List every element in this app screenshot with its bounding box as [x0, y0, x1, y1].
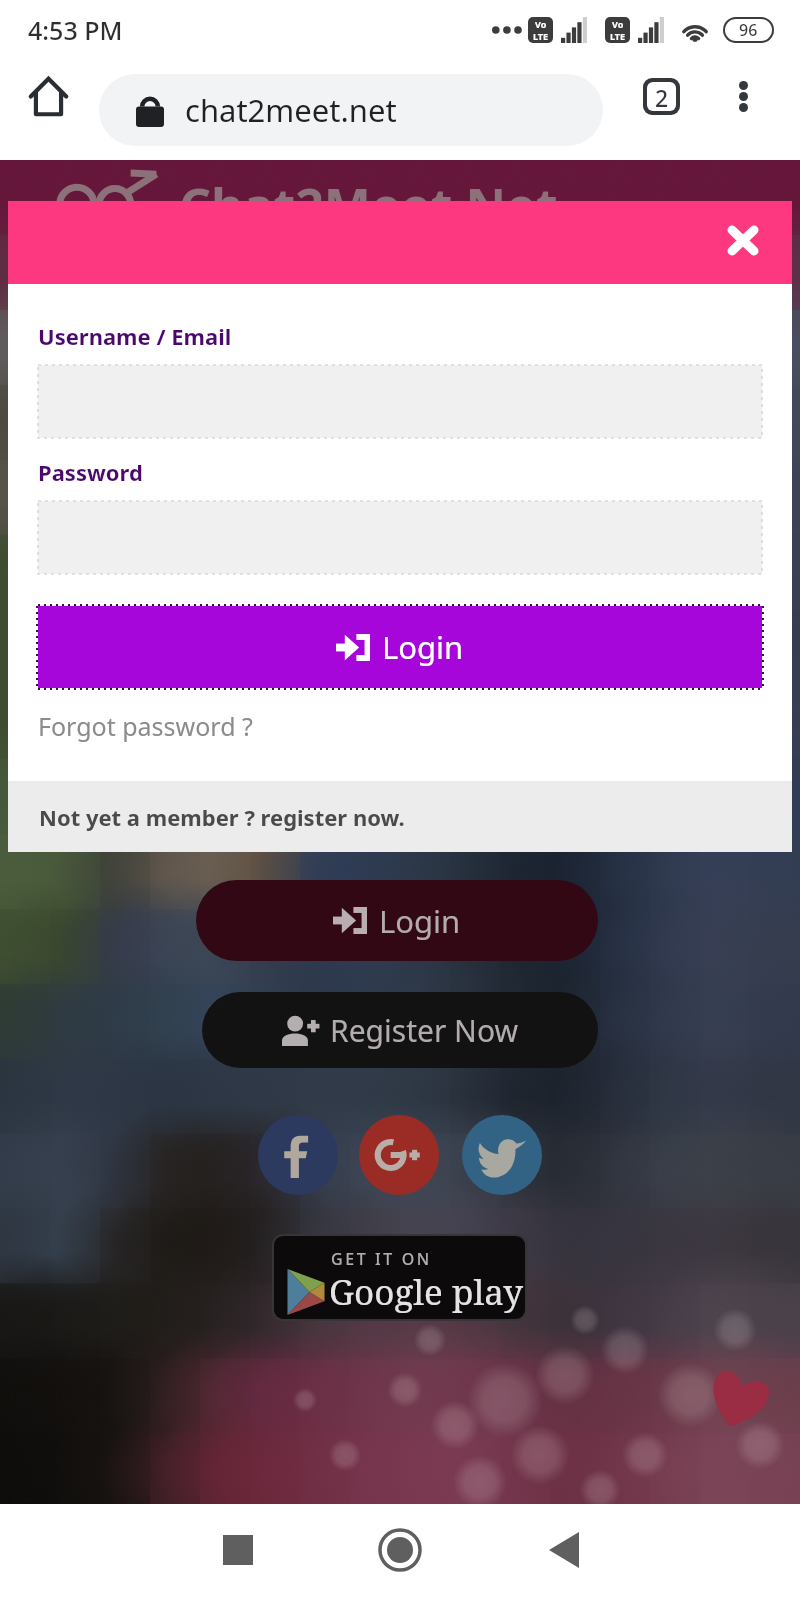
button[interactable]: Not yet a member ? register now. — [8, 781, 792, 852]
staticText: Register Now — [330, 1010, 519, 1051]
button[interactable]: Forgot password ? — [38, 709, 253, 743]
button[interactable]: Tabs: 2 — [625, 60, 697, 132]
button[interactable]: Back — [518, 1504, 610, 1596]
staticText: 2 — [655, 82, 669, 111]
staticText: GET IT ON — [331, 1248, 432, 1270]
button[interactable]: Social login — [359, 1115, 439, 1195]
staticText: Google play — [329, 1268, 524, 1316]
button[interactable]: Close — [715, 212, 771, 268]
staticText: 4:53 PM — [28, 13, 123, 47]
staticText: Vo — [535, 18, 547, 30]
staticText: Login — [382, 626, 464, 668]
button[interactable]: Social login — [462, 1115, 542, 1195]
button[interactable]: Home — [12, 60, 85, 133]
staticText: Not yet a member ? register now. — [39, 802, 405, 832]
staticText: chat2meet.net — [185, 89, 397, 131]
staticText: Username / Email — [38, 321, 232, 351]
button[interactable]: Register Now — [202, 992, 598, 1068]
staticText: LTE — [533, 30, 549, 42]
button[interactable]: Recents — [192, 1504, 284, 1596]
staticText: 96 — [739, 19, 758, 41]
button[interactable]: Login — [196, 880, 598, 961]
staticText: Password — [38, 457, 143, 487]
staticText: LTE — [610, 30, 626, 42]
button[interactable]: Get it on Google Play — [274, 1236, 525, 1319]
button[interactable]: chat2meet.net — [99, 74, 603, 146]
staticText: Login — [379, 900, 461, 942]
button[interactable]: Home — [354, 1504, 446, 1596]
staticText: Vo — [612, 18, 624, 30]
staticText: Chat2Meet Net — [179, 172, 558, 240]
button[interactable]: Login — [38, 606, 762, 688]
button[interactable]: More options — [707, 60, 779, 132]
button[interactable]: Social login — [258, 1115, 338, 1195]
